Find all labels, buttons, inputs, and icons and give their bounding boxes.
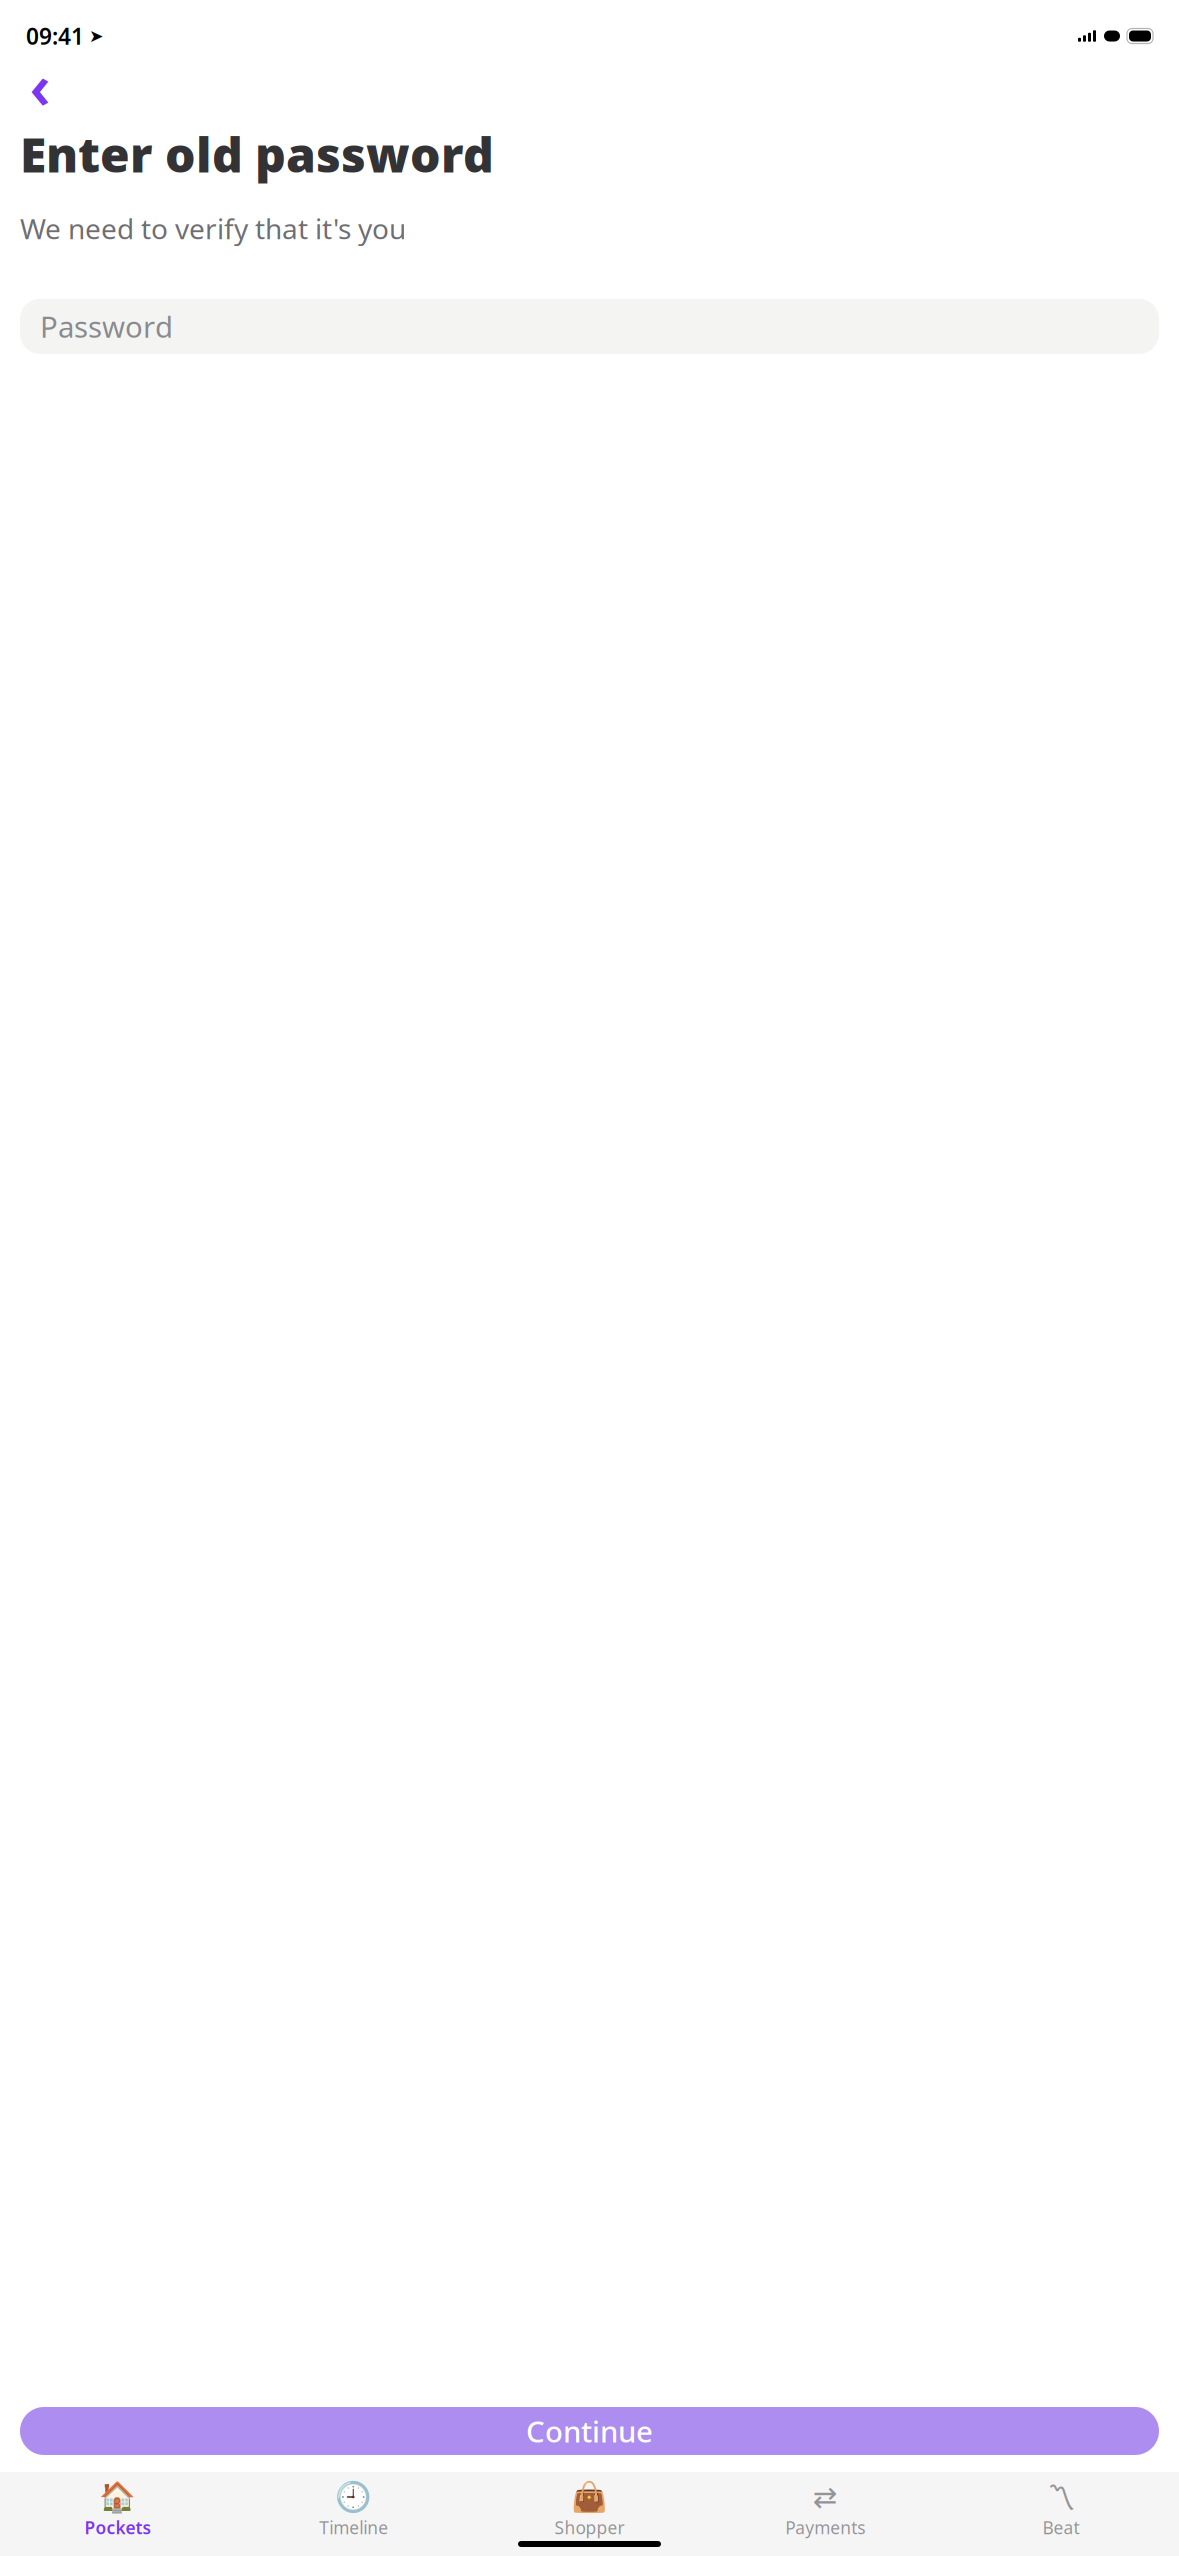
staticText: We need to verify that it's you: [20, 210, 406, 247]
staticText: 🕘: [335, 2480, 372, 2514]
staticText: Enter old password: [20, 122, 494, 186]
button[interactable]: Back: [16, 62, 64, 108]
staticText: ⇄: [813, 2480, 838, 2514]
button[interactable]: Continue: [20, 2407, 1159, 2455]
button[interactable]: 🏠: [0, 2484, 236, 2539]
staticText: ➤: [89, 26, 104, 46]
staticText: Timeline: [319, 2516, 388, 2539]
button[interactable]: 🕘: [236, 2484, 472, 2539]
staticText: Continue: [526, 2411, 653, 2450]
staticText: ‹: [29, 44, 50, 126]
button[interactable]: Password: [20, 299, 1159, 354]
button[interactable]: 〽: [943, 2484, 1179, 2539]
staticText: 09:41: [26, 21, 84, 51]
staticText: Pockets: [84, 2516, 151, 2539]
staticText: Password: [40, 307, 173, 346]
button[interactable]: 👜: [472, 2484, 707, 2539]
staticText: 🏠: [99, 2480, 136, 2514]
staticText: Beat: [1043, 2516, 1080, 2539]
staticText: Payments: [785, 2516, 865, 2539]
button[interactable]: ⇄: [707, 2484, 943, 2539]
staticText: 〽: [1047, 2483, 1076, 2511]
staticText: Shopper: [554, 2516, 624, 2539]
staticText: 👜: [571, 2480, 608, 2514]
